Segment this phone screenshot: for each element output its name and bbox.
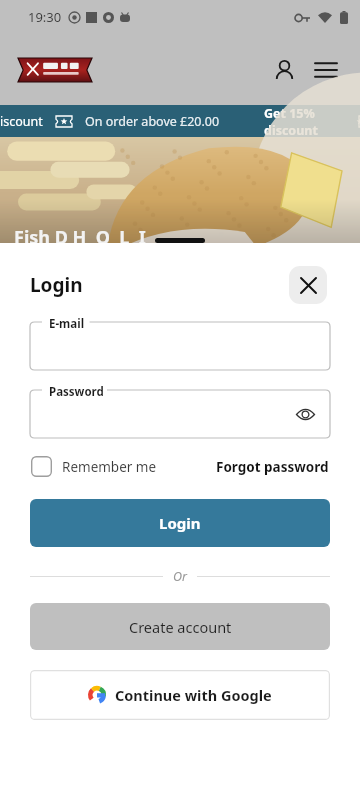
button[interactable]: Forgot password bbox=[216, 458, 329, 476]
staticText: E-mail bbox=[49, 316, 85, 332]
button[interactable]: Continue with Google bbox=[30, 670, 330, 720]
staticText: Forgot password bbox=[216, 458, 329, 476]
staticText: Continue with Google bbox=[115, 685, 272, 705]
staticText: Login bbox=[30, 272, 83, 298]
staticText: Or bbox=[173, 568, 187, 585]
button[interactable]: Restaurant logo bbox=[18, 58, 92, 82]
staticText: Remember me bbox=[62, 458, 157, 476]
staticText: Create account bbox=[129, 617, 232, 637]
staticText: iscount bbox=[0, 113, 43, 130]
staticText: Password bbox=[49, 384, 104, 400]
button[interactable]: Close bbox=[289, 266, 327, 304]
staticText: Get 15% discount bbox=[264, 105, 360, 137]
button[interactable]: Login bbox=[30, 499, 330, 547]
staticText: On order above £20.00 bbox=[85, 113, 220, 130]
button[interactable]: Account bbox=[266, 52, 302, 88]
button[interactable]: Create account bbox=[30, 603, 330, 650]
button[interactable]: Menu bbox=[308, 52, 344, 88]
button[interactable]: Show password bbox=[292, 401, 318, 427]
staticText: Login bbox=[159, 513, 201, 533]
button[interactable]: iscount bbox=[0, 105, 360, 137]
staticText: 19:30 bbox=[28, 8, 62, 26]
button[interactable]: Remember me bbox=[31, 456, 157, 477]
staticText: Fish D H O L I bbox=[14, 225, 146, 250]
